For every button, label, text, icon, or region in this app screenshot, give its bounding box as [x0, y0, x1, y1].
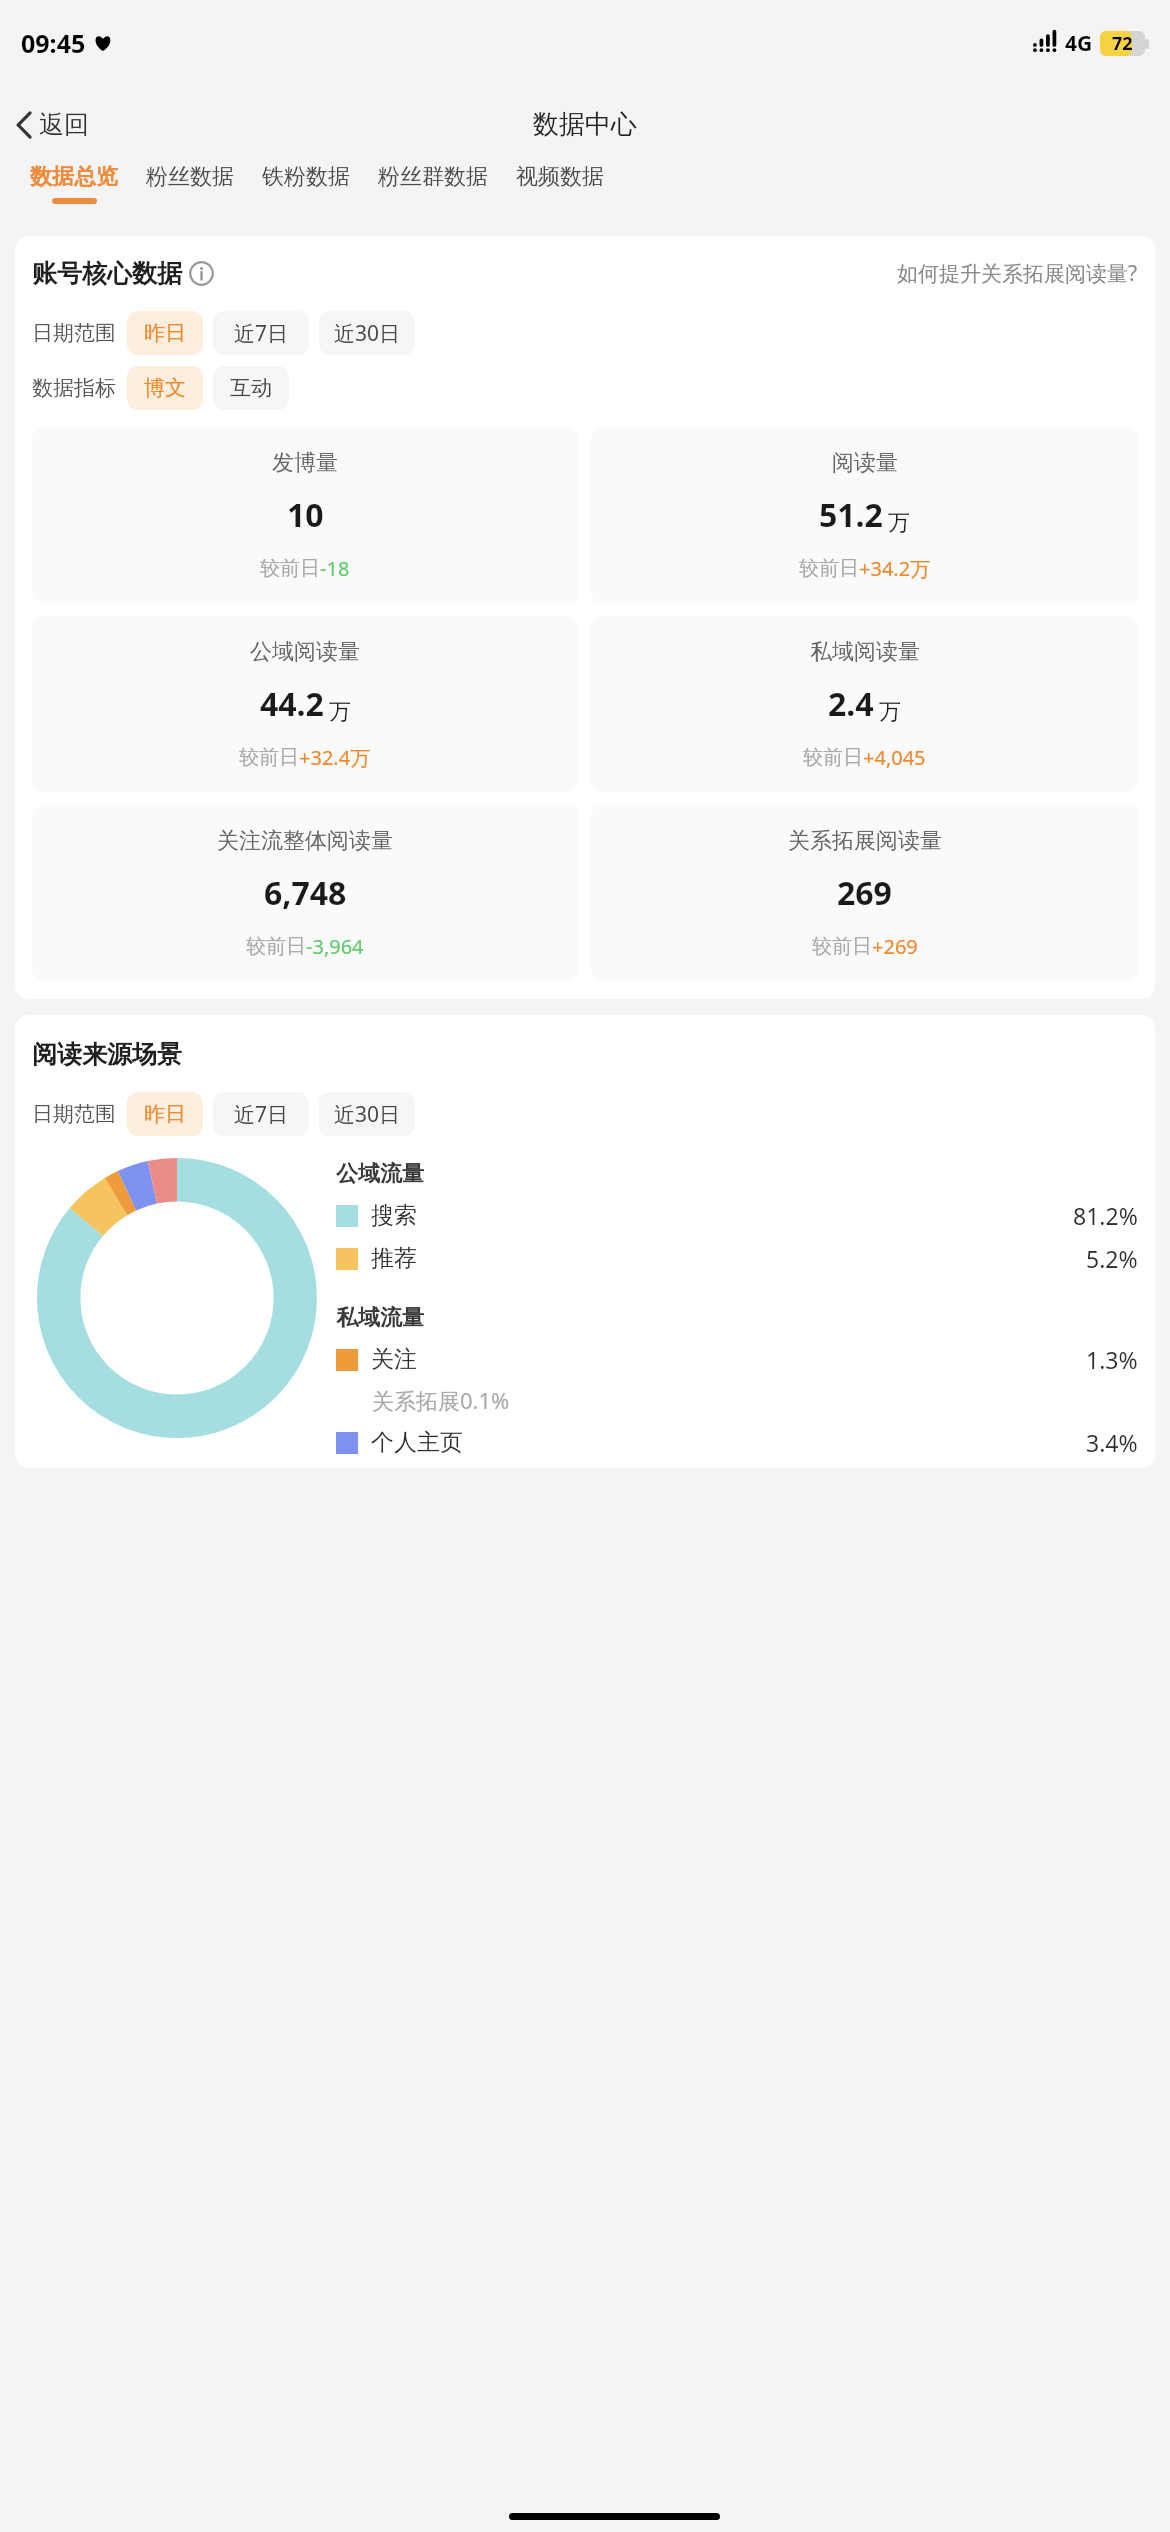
button[interactable]: 返回 — [0, 103, 101, 146]
button[interactable]: 粉丝数据 — [132, 163, 248, 204]
button[interactable]: 阅读量 — [591, 427, 1138, 603]
staticText: 近30日 — [334, 319, 401, 348]
staticText: 昨日 — [144, 1101, 186, 1127]
staticText: 6,748 — [264, 871, 347, 915]
staticText: 2.4 — [828, 682, 874, 726]
button[interactable]: 说明 — [189, 261, 214, 286]
staticText: 3.4% — [1086, 1427, 1138, 1458]
staticText: 较前日 — [246, 934, 306, 959]
staticText: 81.2% — [1073, 1200, 1138, 1231]
button[interactable]: 个人主页 — [336, 1427, 1138, 1458]
staticText: 博文 — [144, 375, 186, 401]
staticText: 5.2% — [1086, 1243, 1138, 1274]
staticText: 关注 — [371, 1345, 417, 1374]
staticText: 数据指标 — [32, 375, 116, 401]
staticText: 较前日 — [799, 556, 859, 581]
button[interactable]: 铁粉数据 — [248, 163, 364, 204]
staticText: 公域流量 — [336, 1160, 424, 1188]
staticText: 269 — [837, 871, 892, 915]
button[interactable]: 近7日 — [213, 311, 309, 355]
staticText: 51.2 — [819, 493, 883, 537]
staticText: +32.4万 — [299, 744, 371, 771]
button[interactable]: 近30日 — [319, 311, 415, 355]
staticText: 账号核心数据 — [32, 258, 182, 289]
staticText: 近7日 — [234, 319, 289, 348]
staticText: 搜索 — [371, 1201, 417, 1230]
staticText: 铁粉数据 — [262, 163, 350, 191]
staticText: 1.3% — [1086, 1344, 1138, 1375]
staticText: 粉丝群数据 — [378, 163, 488, 191]
staticText: 较前日 — [812, 934, 872, 959]
staticText: 日期范围 — [32, 320, 116, 346]
button[interactable]: 视频数据 — [502, 163, 618, 204]
staticText: +34.2万 — [859, 555, 931, 582]
staticText: 公域阅读量 — [250, 638, 360, 666]
button[interactable]: 博文 — [127, 366, 203, 410]
staticText: 阅读量 — [832, 449, 898, 477]
staticText: 09:45 — [21, 26, 86, 60]
staticText: 阅读来源场景 — [32, 1039, 182, 1070]
button[interactable]: 昨日 — [127, 1092, 203, 1136]
staticText: 万 — [879, 698, 901, 726]
staticText: 关系拓展0.1% — [372, 1385, 510, 1415]
button[interactable]: 互动 — [213, 366, 289, 410]
staticText: -3,964 — [306, 933, 364, 960]
staticText: 昨日 — [144, 320, 186, 346]
staticText: 近7日 — [234, 1100, 289, 1129]
staticText: 4G — [1065, 29, 1093, 58]
staticText: 72 — [1112, 31, 1133, 56]
staticText: 日期范围 — [32, 1101, 116, 1127]
staticText: +4,045 — [863, 744, 926, 771]
staticText: 视频数据 — [516, 163, 604, 191]
button[interactable]: 关注流整体阅读量 — [32, 805, 578, 981]
staticText: 返回 — [39, 109, 89, 140]
staticText: 个人主页 — [371, 1428, 463, 1457]
staticText: 关注流整体阅读量 — [217, 827, 393, 855]
staticText: 推荐 — [371, 1244, 417, 1273]
button[interactable]: 昨日 — [127, 311, 203, 355]
staticText: 近30日 — [334, 1100, 401, 1129]
button[interactable]: 关系拓展阅读量 — [591, 805, 1138, 981]
staticText: 关系拓展阅读量 — [788, 827, 942, 855]
staticText: 较前日 — [260, 556, 320, 581]
staticText: 互动 — [230, 375, 272, 401]
staticText: 发博量 — [272, 449, 338, 477]
button[interactable]: 私域阅读量 — [591, 616, 1138, 792]
button[interactable]: 关注 — [336, 1344, 1138, 1375]
button[interactable]: 推荐 — [336, 1243, 1138, 1274]
button[interactable]: 搜索 — [336, 1200, 1138, 1231]
button[interactable]: 近30日 — [319, 1092, 415, 1136]
button[interactable]: 发博量 — [32, 427, 578, 603]
staticText: +269 — [872, 933, 918, 960]
staticText: 10 — [287, 493, 324, 537]
staticText: 44.2 — [260, 682, 324, 726]
staticText: 如何提升关系拓展阅读量? — [897, 259, 1138, 288]
button[interactable]: 数据总览 — [16, 163, 132, 204]
staticText: 私域阅读量 — [810, 638, 920, 666]
button[interactable]: 如何提升关系拓展阅读量? — [897, 259, 1138, 288]
staticText: 数据总览 — [30, 163, 118, 191]
staticText: 数据中心 — [533, 108, 637, 141]
staticText: 较前日 — [239, 745, 299, 770]
staticText: -18 — [320, 555, 350, 582]
button[interactable]: 公域阅读量 — [32, 616, 578, 792]
button[interactable]: 粉丝群数据 — [364, 163, 502, 204]
staticText: 私域流量 — [336, 1304, 424, 1332]
staticText: 万 — [888, 509, 910, 537]
staticText: 万 — [329, 698, 351, 726]
staticText: 粉丝数据 — [146, 163, 234, 191]
button[interactable]: 近7日 — [213, 1092, 309, 1136]
staticText: 较前日 — [803, 745, 863, 770]
